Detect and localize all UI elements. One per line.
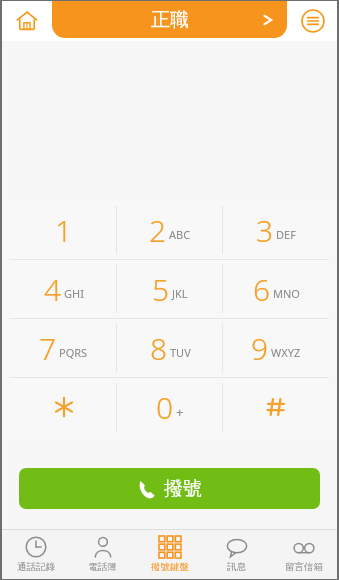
staticText: 2: [149, 210, 167, 251]
staticText: 1: [55, 210, 73, 251]
button[interactable]: Menu: [298, 6, 328, 36]
staticText: 7: [39, 328, 57, 369]
button[interactable]: [223, 378, 329, 436]
button[interactable]: 留言信箱: [270, 530, 337, 579]
button[interactable]: Home: [12, 6, 42, 36]
button[interactable]: 1: [10, 201, 117, 259]
staticText: 留言信箱: [285, 561, 323, 573]
staticText: JKL: [172, 286, 188, 301]
staticText: WXYZ: [271, 345, 301, 360]
staticText: ABC: [169, 227, 191, 242]
button[interactable]: 3: [223, 201, 329, 259]
staticText: 訊息: [227, 561, 246, 573]
staticText: 撥號: [164, 477, 202, 501]
button[interactable]: 撥號: [19, 468, 320, 509]
button[interactable]: 電話簿: [69, 530, 136, 579]
button[interactable]: 9: [223, 319, 329, 377]
staticText: 0: [156, 387, 174, 428]
button[interactable]: 訊息: [203, 530, 270, 579]
button[interactable]: 4: [10, 260, 117, 318]
staticText: 電話簿: [88, 561, 117, 573]
staticText: 9: [251, 328, 269, 369]
staticText: 4: [44, 269, 62, 310]
button[interactable]: 撥號鍵盤: [136, 530, 203, 579]
button[interactable]: 6: [223, 260, 329, 318]
staticText: 6: [253, 269, 271, 310]
button[interactable]: 正職: [52, 1, 287, 38]
button[interactable]: 5: [117, 260, 223, 318]
staticText: MNO: [273, 286, 300, 301]
staticText: 8: [150, 328, 168, 369]
button[interactable]: 7: [10, 319, 117, 377]
staticText: 3: [256, 210, 274, 251]
staticText: 5: [152, 269, 170, 310]
staticText: TUV: [170, 345, 191, 360]
button[interactable]: [10, 378, 117, 436]
staticText: 撥號鍵盤: [151, 561, 189, 573]
staticText: PQRS: [59, 345, 88, 360]
button[interactable]: 8: [117, 319, 223, 377]
staticText: +: [176, 403, 184, 421]
staticText: GHI: [64, 286, 84, 301]
staticText: 通話記錄: [17, 561, 55, 573]
button[interactable]: 2: [117, 201, 223, 259]
button[interactable]: 0: [117, 378, 223, 436]
staticText: 正職: [151, 8, 189, 32]
staticText: DEF: [276, 227, 296, 242]
button[interactable]: 通話記錄: [2, 530, 69, 579]
